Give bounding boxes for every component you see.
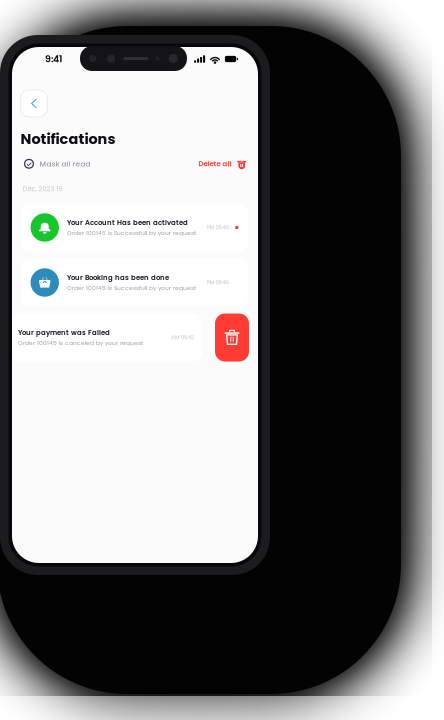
button[interactable]: Your payment was Failed [10, 313, 202, 361]
button[interactable]: Mask all read [24, 159, 90, 169]
staticText: Your Account Has been activated [67, 218, 188, 227]
staticText: Dec, 2023 19 [22, 184, 62, 194]
button[interactable]: Delete [215, 313, 249, 361]
button[interactable]: Your Booking has been done [21, 258, 248, 306]
staticText: Order 100145 is canceled by your request [18, 339, 143, 347]
staticText: Your payment was Failed [18, 328, 110, 337]
staticText: Order 100145 is Successfull by your requ… [67, 284, 196, 292]
button[interactable]: Delete all [198, 158, 247, 169]
staticText: Mask all read [39, 159, 90, 169]
staticText: AM 05:42 [171, 334, 194, 341]
staticText: PM 05:40 [207, 279, 229, 286]
button[interactable]: Back [20, 90, 47, 117]
staticText: Delete all [198, 159, 231, 169]
staticText: Notifications [20, 129, 115, 149]
staticText: Your Booking has been done [67, 273, 169, 282]
staticText: PM 05:40 [207, 224, 229, 231]
staticText: Order 100145 is Successfull by your requ… [67, 229, 196, 237]
button[interactable]: Your Account Has been activated [21, 203, 248, 251]
staticText: 9:41 [45, 52, 62, 66]
